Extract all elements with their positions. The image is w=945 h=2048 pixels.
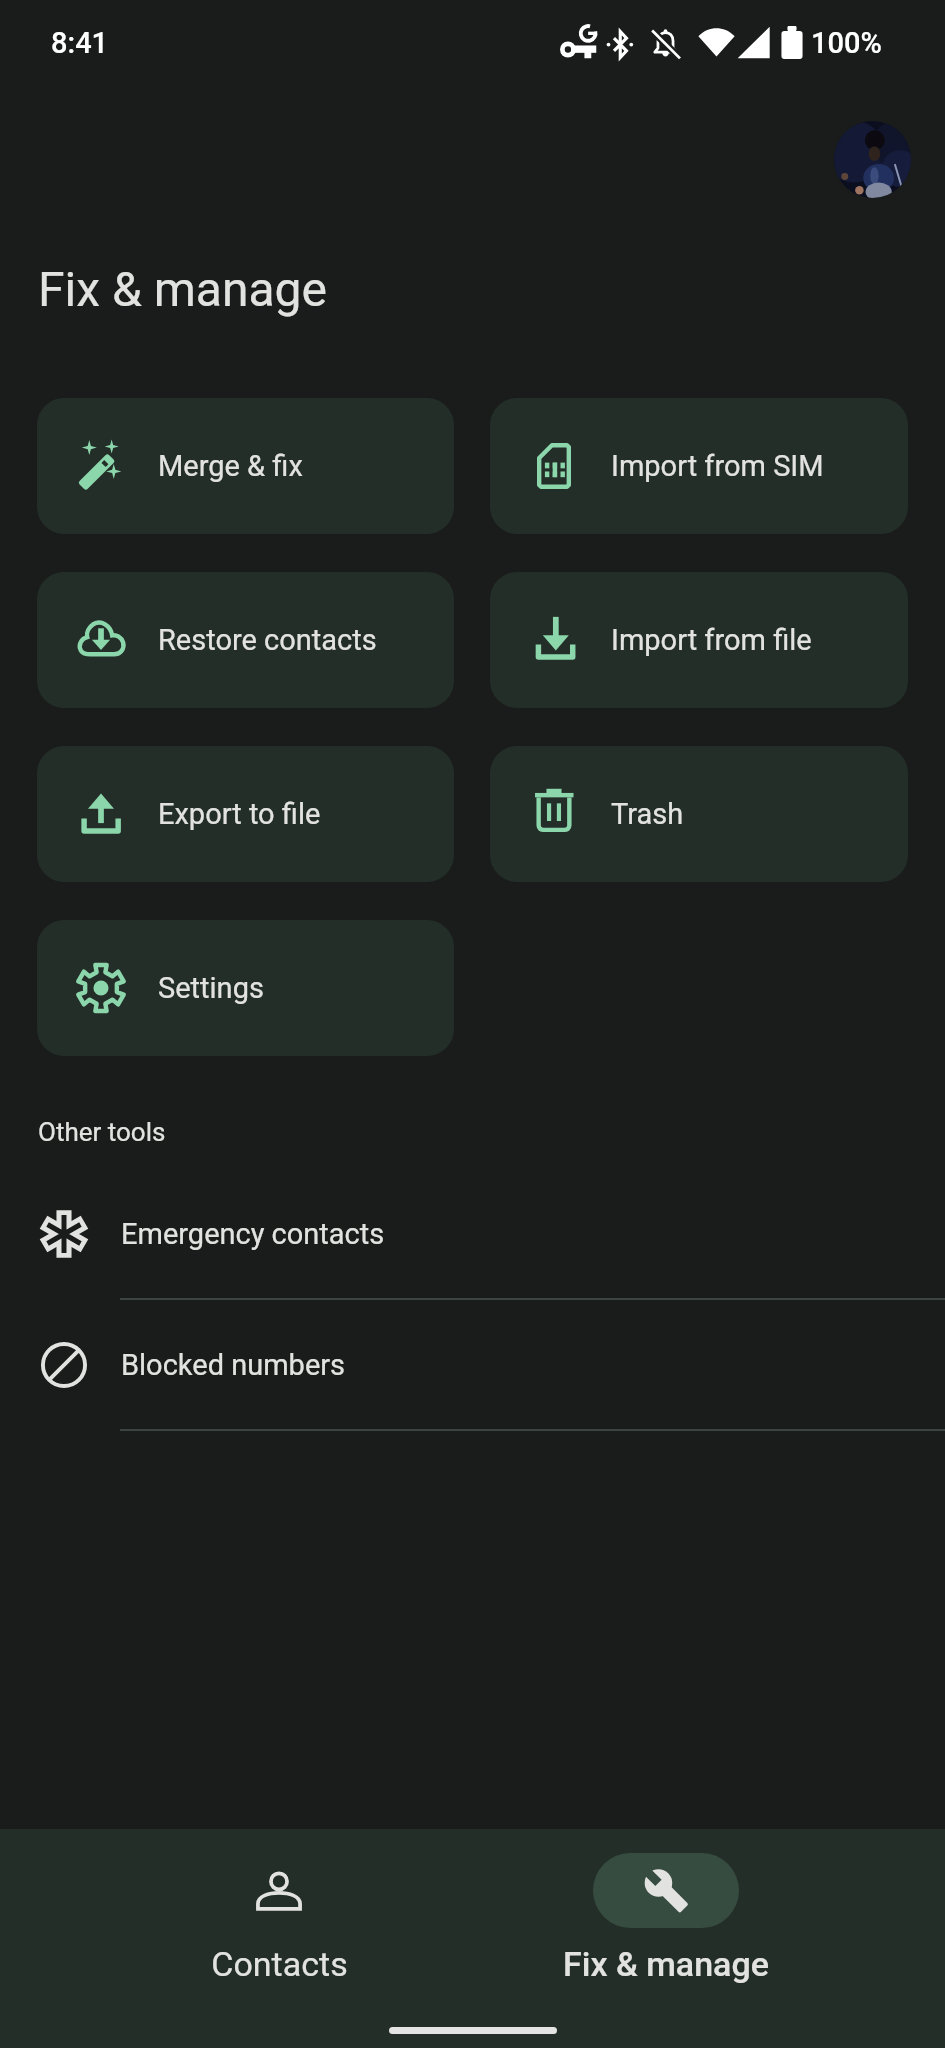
button[interactable]: Export to file: [37, 746, 454, 882]
button[interactable]: Trash: [490, 746, 908, 882]
button[interactable]: Import from file: [490, 572, 908, 708]
staticText: Settings: [158, 971, 264, 1005]
staticText: Trash: [611, 797, 684, 831]
button[interactable]: Emergency contacts: [0, 1169, 945, 1300]
staticText: Import from file: [611, 623, 812, 657]
staticText: 8:41: [51, 26, 109, 60]
staticText: Contacts: [211, 1944, 348, 1984]
button[interactable]: Settings: [37, 920, 454, 1056]
staticText: Blocked numbers: [121, 1348, 346, 1382]
staticText: Restore contacts: [158, 623, 377, 657]
staticText: 100%: [811, 26, 882, 60]
button[interactable]: Import from SIM: [490, 398, 908, 534]
button[interactable]: Fix & manage: [556, 1853, 776, 1984]
button[interactable]: Merge & fix: [37, 398, 454, 534]
button[interactable]: Contacts: [169, 1853, 389, 1984]
button[interactable]: Blocked numbers: [0, 1300, 945, 1431]
staticText: Other tools: [38, 1117, 166, 1147]
staticText: Fix & manage: [563, 1944, 769, 1984]
button[interactable]: Account: [834, 121, 911, 198]
staticText: Import from SIM: [611, 449, 824, 483]
staticText: Export to file: [158, 797, 321, 831]
button[interactable]: Restore contacts: [37, 572, 454, 708]
staticText: Fix & manage: [38, 261, 327, 317]
staticText: Merge & fix: [158, 449, 303, 483]
staticText: Emergency contacts: [121, 1217, 385, 1251]
